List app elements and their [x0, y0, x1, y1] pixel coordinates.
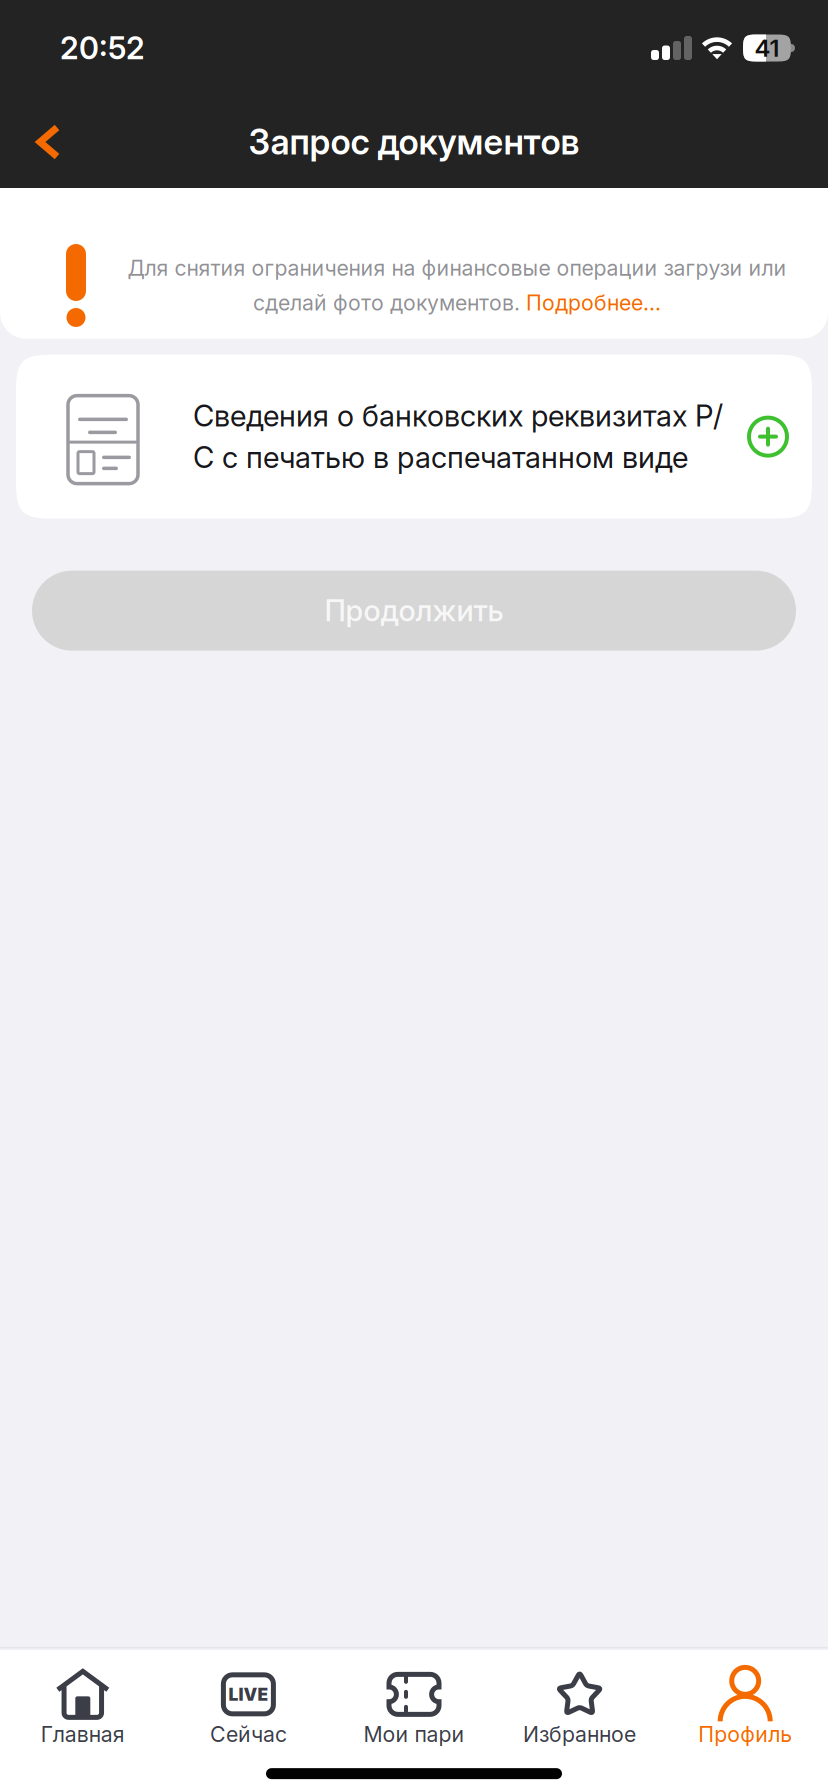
staticText: LIVE	[228, 1684, 268, 1705]
staticText: Профиль	[698, 1721, 792, 1747]
staticText: Избранное	[523, 1721, 636, 1747]
button[interactable]: Назад	[0, 99, 100, 184]
button[interactable]: Продолжить	[32, 571, 796, 651]
staticText: Сведения о банковских реквизитах Р/С с п…	[193, 398, 723, 475]
button[interactable]: LIVE	[166, 1671, 331, 1747]
button[interactable]: Профиль	[662, 1671, 828, 1747]
button[interactable]: Сведения о банковских реквизитах Р/С с п…	[16, 355, 812, 519]
button[interactable]: Избранное	[497, 1671, 662, 1747]
staticText: Подробнее...	[526, 290, 661, 316]
button[interactable]: Мои пари	[331, 1671, 497, 1747]
button[interactable]: Подробнее...	[526, 290, 661, 316]
staticText: Сейчас	[210, 1721, 287, 1747]
staticText: 41	[754, 33, 779, 62]
staticText: Для снятия ограничения на финансовые опе…	[127, 255, 786, 281]
button[interactable]: Главная	[0, 1671, 166, 1747]
staticText: 20:52	[60, 29, 145, 66]
staticText: Запрос документов	[248, 121, 579, 163]
staticText: Продолжить	[324, 593, 503, 628]
staticText: Главная	[41, 1721, 125, 1747]
staticText: сделай фото документов.	[253, 290, 526, 316]
staticText: Мои пари	[363, 1721, 464, 1747]
